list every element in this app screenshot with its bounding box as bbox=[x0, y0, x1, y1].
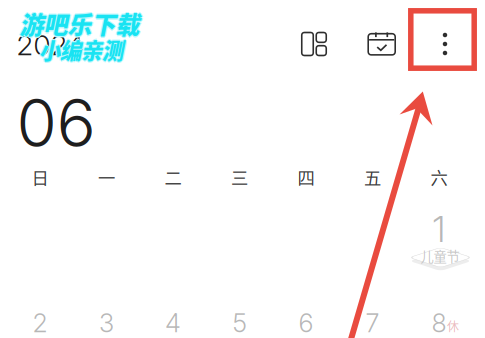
staticText: 小编亲测 bbox=[0, 0, 84, 31]
button[interactable]: More options bbox=[423, 22, 467, 66]
staticText: 小编亲测 bbox=[0, 0, 84, 31]
button[interactable]: Today bbox=[360, 21, 404, 65]
staticText: 2024 bbox=[16, 28, 83, 62]
staticText: 游吧乐下载 bbox=[0, 0, 120, 35]
staticText: 五 bbox=[364, 164, 381, 190]
staticText: 3 bbox=[99, 308, 114, 338]
staticText: 06 bbox=[16, 83, 95, 162]
staticText: 游吧乐下载 bbox=[0, 0, 120, 35]
staticText: 一 bbox=[98, 164, 115, 190]
staticText: 日 bbox=[31, 164, 48, 190]
staticText: 6 bbox=[298, 308, 313, 338]
staticText: 游吧乐下载 bbox=[0, 0, 120, 35]
staticText: 小编亲测 bbox=[0, 0, 84, 31]
staticText: 8 bbox=[431, 308, 446, 338]
staticText: 1 bbox=[432, 207, 445, 251]
staticText: 7 bbox=[365, 308, 379, 338]
staticText: 六 bbox=[430, 164, 447, 190]
staticText: 游吧乐下载 bbox=[0, 0, 120, 35]
staticText: 2 bbox=[32, 308, 47, 338]
staticText: 小编亲测 bbox=[0, 0, 84, 31]
button[interactable]: Layout view bbox=[292, 22, 336, 66]
staticText: 四 bbox=[297, 164, 314, 190]
staticText: 二 bbox=[164, 164, 181, 190]
staticText: 小编亲测 bbox=[0, 0, 84, 31]
staticText: 4 bbox=[165, 308, 181, 338]
staticText: 休 bbox=[447, 317, 459, 335]
staticText: 三 bbox=[231, 164, 248, 190]
staticText: 5 bbox=[232, 308, 246, 338]
staticText: 游吧乐下载 bbox=[0, 0, 120, 35]
staticText: 儿童节 bbox=[420, 246, 459, 266]
